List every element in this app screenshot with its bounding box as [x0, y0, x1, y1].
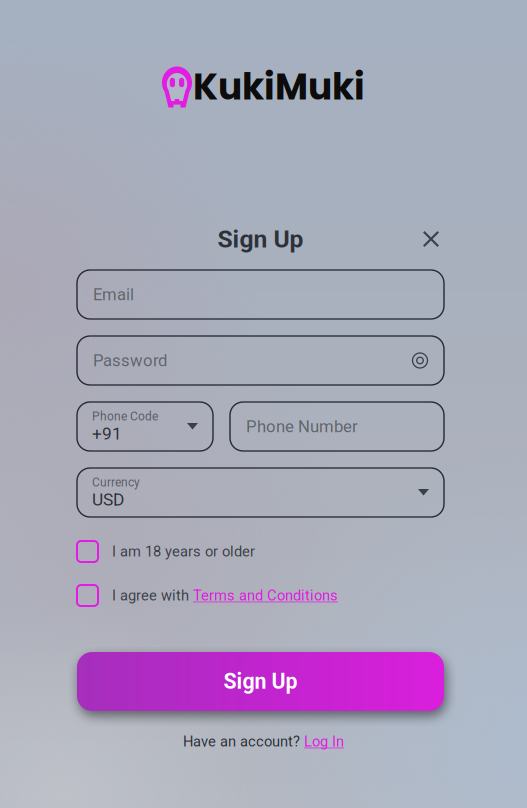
- staticText: Sign Up: [223, 669, 297, 694]
- staticText: KukiMuki: [193, 62, 365, 112]
- staticText: Email: [93, 285, 134, 304]
- button[interactable]: I am 18 years or older: [77, 541, 444, 562]
- staticText: Phone Code: [92, 409, 158, 423]
- staticText: USD: [92, 489, 124, 510]
- staticText: Currency: [92, 475, 140, 489]
- staticText: Have an account?: [183, 733, 304, 750]
- staticText: Password: [93, 351, 167, 370]
- staticText: Phone Number: [246, 417, 358, 436]
- staticText: Terms and Conditions: [193, 587, 338, 604]
- staticText: I agree with: [112, 587, 193, 604]
- button[interactable]: Terms and Conditions: [193, 587, 338, 604]
- button[interactable]: Sign Up: [77, 652, 444, 711]
- staticText: +91: [92, 423, 122, 444]
- staticText: I am 18 years or older: [112, 543, 255, 560]
- staticText: Sign Up: [217, 224, 303, 253]
- button[interactable]: I agree with Terms and Conditions: [77, 585, 98, 606]
- button[interactable]: Close: [418, 226, 444, 252]
- button[interactable]: Log In: [304, 733, 344, 750]
- staticText: Log In: [304, 733, 344, 750]
